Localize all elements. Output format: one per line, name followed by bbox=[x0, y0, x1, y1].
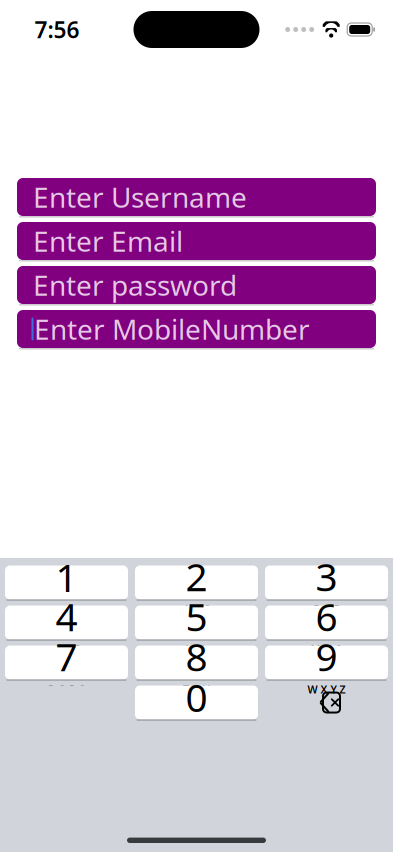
staticText: 3 bbox=[315, 550, 337, 602]
staticText: A B C bbox=[183, 602, 210, 616]
staticText: 5 bbox=[185, 590, 207, 642]
button[interactable]: 3 bbox=[265, 565, 388, 599]
staticText: 9 bbox=[315, 630, 337, 682]
button[interactable]: 1 bbox=[5, 565, 128, 599]
staticText: Enter Username bbox=[33, 178, 247, 216]
staticText: P Q R S bbox=[48, 682, 85, 696]
button[interactable]: 0 bbox=[135, 685, 258, 719]
button[interactable]: 5 bbox=[135, 605, 258, 639]
staticText: 4 bbox=[55, 590, 77, 642]
staticText: 7 bbox=[55, 630, 77, 682]
staticText: 7:56 bbox=[34, 14, 79, 44]
staticText: W X Y Z bbox=[307, 682, 345, 696]
button[interactable]: Delete bbox=[265, 685, 388, 719]
staticText: T U V bbox=[183, 682, 210, 696]
button[interactable]: 2 bbox=[135, 565, 258, 599]
button[interactable]: Enter Username bbox=[17, 178, 376, 216]
staticText: M N O bbox=[310, 642, 342, 656]
button[interactable]: 7 bbox=[5, 645, 128, 679]
button[interactable]: 6 bbox=[265, 605, 388, 639]
staticText: Enter password bbox=[33, 266, 237, 304]
staticText: G H I bbox=[53, 642, 79, 656]
staticText: 0 bbox=[185, 671, 207, 723]
button[interactable]: 9 bbox=[265, 645, 388, 679]
button[interactable]: 8 bbox=[135, 645, 258, 679]
button[interactable]: 4 bbox=[5, 605, 128, 639]
button[interactable]: Enter password bbox=[17, 266, 376, 304]
staticText: J K L bbox=[185, 642, 207, 656]
button[interactable]: Enter Email bbox=[17, 222, 376, 260]
staticText: 1 bbox=[55, 551, 77, 603]
staticText: 2 bbox=[185, 550, 207, 602]
button[interactable]: Enter MobileNumber bbox=[17, 310, 376, 348]
staticText: 8 bbox=[185, 630, 207, 682]
staticText: 6 bbox=[315, 590, 337, 642]
staticText: Enter MobileNumber bbox=[34, 310, 310, 348]
staticText: Enter Email bbox=[33, 222, 183, 260]
staticText: D E F bbox=[313, 602, 339, 616]
